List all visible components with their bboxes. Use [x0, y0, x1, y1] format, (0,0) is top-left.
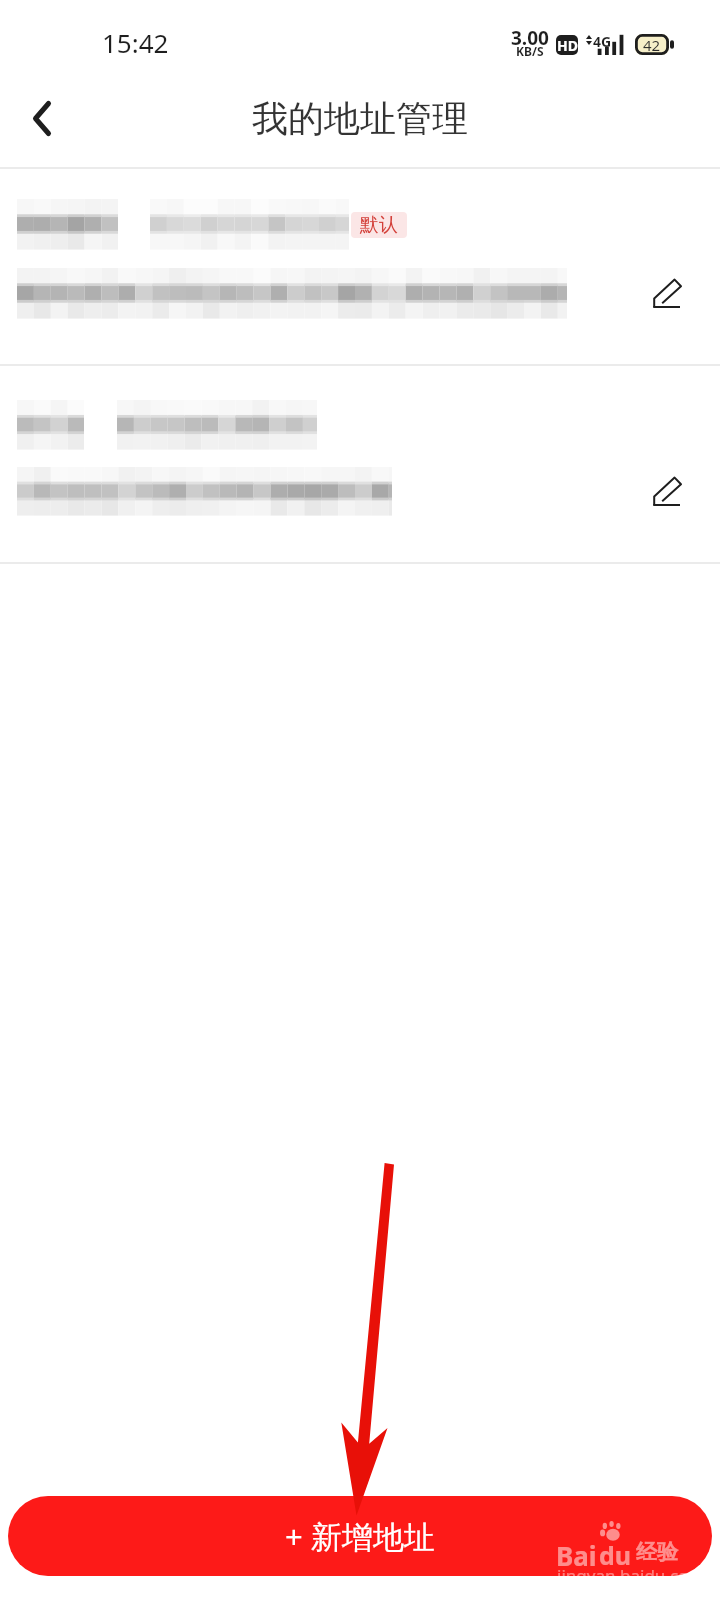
button[interactable]: + 新增地址 [8, 1496, 712, 1576]
staticText: + 新增地址 [285, 1515, 435, 1557]
staticText: 3.00 [511, 25, 549, 51]
staticText: Bai [556, 1538, 597, 1573]
staticText: jingyan.baidu.com [557, 1564, 705, 1587]
staticText: 我的地址管理 [252, 96, 468, 141]
button[interactable]: Edit address [637, 263, 693, 319]
staticText: 42 [643, 35, 661, 55]
staticText: HD [557, 36, 578, 55]
staticText: du [599, 1538, 632, 1572]
staticText: 4G [593, 32, 612, 51]
staticText: 默认 [360, 213, 398, 237]
button[interactable] [0, 366, 720, 562]
button[interactable] [0, 169, 720, 364]
staticText: 15:42 [102, 25, 169, 60]
staticText: 经验 [636, 1539, 678, 1565]
button[interactable]: Edit address [637, 461, 693, 517]
staticText: KB/S [516, 43, 544, 59]
button[interactable]: Back [4, 74, 80, 162]
